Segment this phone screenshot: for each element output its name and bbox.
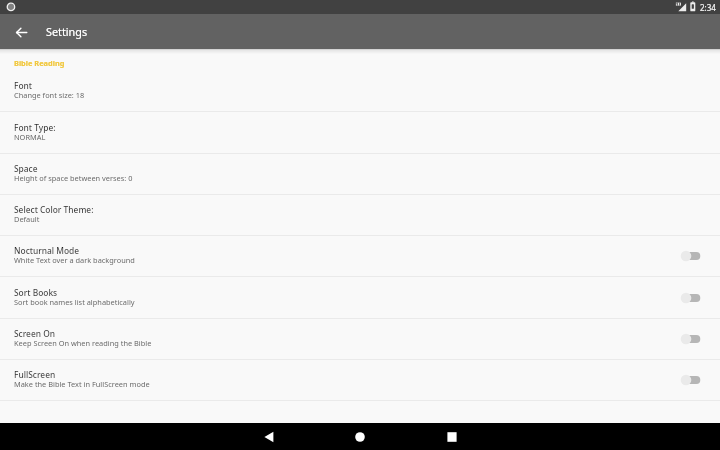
button[interactable]: FullScreen [0, 360, 720, 401]
staticText: Bible Reading [14, 58, 65, 68]
staticText: Screen On [14, 328, 56, 339]
button[interactable]: Font [0, 70, 720, 112]
staticText: Sort Books [14, 287, 58, 298]
button[interactable]: Toggle Screen On [680, 332, 700, 346]
staticText: FullScreen [14, 369, 56, 380]
button[interactable]: Nocturnal Mode [0, 236, 720, 277]
staticText: 2:34 [700, 2, 716, 13]
button[interactable]: Toggle Sort Books [680, 291, 700, 305]
button[interactable]: Toggle FullScreen [680, 373, 700, 387]
staticText: Settings [46, 24, 88, 39]
button[interactable]: Screen On [0, 319, 720, 360]
staticText: Default [14, 214, 40, 224]
staticText: Height of space between verses: 0 [14, 173, 133, 183]
button[interactable]: Select Color Theme: [0, 195, 720, 236]
button[interactable]: Back [255, 424, 281, 450]
button[interactable]: Home [347, 424, 373, 450]
button[interactable]: Sort Books [0, 277, 720, 319]
staticText: Keep Screen On when reading the Bible [14, 338, 152, 348]
staticText: Sort book names list alphabetically [14, 297, 135, 307]
staticText: Font [14, 80, 33, 91]
staticText: Space [14, 163, 38, 174]
button[interactable]: Recent apps [439, 424, 465, 450]
staticText: Change font size: 18 [14, 90, 85, 100]
staticText: White Text over a dark background [14, 255, 135, 265]
button[interactable]: Back [9, 20, 33, 44]
button[interactable]: Space [0, 154, 720, 195]
staticText: Make the Bible Text in FullScreen mode [14, 379, 150, 389]
button[interactable]: Toggle Nocturnal Mode [680, 249, 700, 263]
staticText: Nocturnal Mode [14, 245, 80, 256]
staticText: Font Type: [14, 122, 56, 133]
staticText: NORMAL [14, 132, 46, 142]
button[interactable]: Font Type: [0, 112, 720, 154]
staticText: Select Color Theme: [14, 204, 94, 215]
